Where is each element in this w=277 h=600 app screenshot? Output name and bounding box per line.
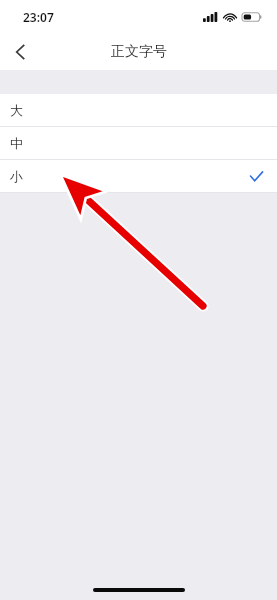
staticText: 正文字号: [111, 43, 167, 61]
staticText: 小: [10, 168, 23, 184]
button[interactable]: 大: [0, 94, 277, 126]
staticText: 23:07: [23, 9, 54, 25]
button[interactable]: 中: [0, 127, 277, 159]
staticText: 中: [10, 135, 23, 151]
staticText: 大: [10, 102, 23, 118]
button[interactable]: 小: [0, 160, 277, 192]
button[interactable]: Back: [0, 33, 40, 70]
